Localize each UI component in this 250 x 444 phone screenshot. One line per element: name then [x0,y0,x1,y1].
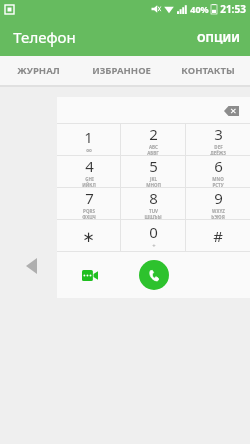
staticText: ШЩЪЫ [144,214,162,220]
staticText: Телефон [13,27,76,47]
button[interactable]: 6 [186,156,250,188]
staticText: ИЗБРАННОЕ [92,64,151,77]
staticText: 3 [214,124,223,144]
staticText: 2 [149,124,158,144]
staticText: ДЕЁЖЗ [210,150,226,156]
button[interactable]: Backspace [220,102,242,120]
staticText: oo [86,147,92,153]
button[interactable]: ∗ [57,220,120,252]
button[interactable]: 9 [186,188,250,220]
staticText: JKL [150,176,157,182]
button[interactable]: 0 [121,220,185,252]
button[interactable]: Video call [57,252,122,298]
staticText: ABC [149,144,158,150]
staticText: ∗ [82,228,95,245]
staticText: 5 [149,156,158,176]
staticText: 21:53 [220,2,246,16]
button[interactable]: ЖУРНАЛ [0,56,77,85]
staticText: РСТУ [212,182,224,188]
staticText: 4 [85,156,94,176]
staticText: PQRS [83,208,95,214]
staticText: WXYZ [212,208,225,214]
button[interactable]: 8 [121,188,185,220]
button[interactable]: 1 [57,124,120,156]
staticText: ЖУРНАЛ [17,64,60,77]
staticText: АБВГ [147,150,159,156]
staticText: 1 [84,127,93,147]
staticText: DEF [214,144,223,150]
button[interactable]: 7 [57,188,120,220]
staticText: 40% [190,3,209,15]
staticText: ИЙКЛ [82,182,96,188]
staticText: 9 [214,188,223,208]
button[interactable]: 5 [121,156,185,188]
button[interactable]: КОНТАКТЫ [165,56,250,85]
button[interactable]: ИЗБРАННОЕ [77,56,165,85]
staticText: ФХЦЧ [82,214,96,220]
staticText: 7 [85,188,94,208]
staticText: 0 [149,222,158,242]
button[interactable]: 4 [57,156,120,188]
button[interactable]: # [186,220,250,252]
staticText: MNO [212,176,224,182]
staticText: КОНТАКТЫ [181,64,235,77]
button[interactable]: 3 [186,124,250,156]
staticText: # [213,226,223,246]
button[interactable]: 2 [121,124,185,156]
staticText: 6 [214,156,223,176]
staticText: + [152,242,156,250]
button[interactable]: Call [139,260,169,290]
staticText: МНОП [146,182,161,188]
staticText: TUV [149,208,158,214]
staticText: ОПЦИИ [197,30,240,45]
button[interactable]: Collapse [22,253,40,279]
staticText: GHI [85,176,94,182]
staticText: 8 [149,188,158,208]
staticText: ЬЭЮЯ [211,214,225,220]
button[interactable]: ОПЦИИ [187,18,250,56]
